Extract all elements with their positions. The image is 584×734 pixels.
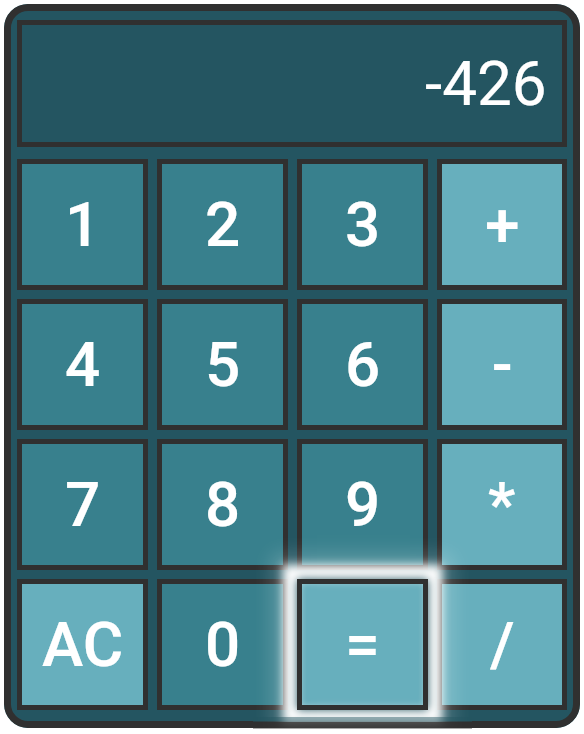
staticText: AC: [42, 608, 124, 681]
button[interactable]: *: [437, 439, 567, 570]
staticText: 8: [205, 468, 241, 541]
button[interactable]: +: [437, 159, 567, 290]
staticText: 3: [345, 188, 381, 261]
button[interactable]: 4: [17, 299, 148, 430]
button[interactable]: 1: [17, 159, 148, 290]
button[interactable]: AC: [17, 579, 148, 710]
button[interactable]: 6: [297, 299, 428, 430]
staticText: +: [485, 188, 520, 261]
staticText: -: [492, 328, 513, 401]
staticText: 6: [345, 328, 381, 401]
button[interactable]: 7: [17, 439, 148, 570]
button[interactable]: 0: [157, 579, 288, 710]
staticText: *: [488, 468, 516, 541]
staticText: /: [490, 608, 515, 681]
staticText: 7: [65, 468, 101, 541]
staticText: -426: [425, 47, 547, 120]
staticText: 5: [205, 328, 241, 401]
button[interactable]: 2: [157, 159, 288, 290]
button[interactable]: -: [437, 299, 567, 430]
button[interactable]: -426: [17, 20, 567, 147]
staticText: 9: [345, 468, 381, 541]
button[interactable]: /: [437, 579, 567, 710]
staticText: 4: [65, 328, 101, 401]
button[interactable]: 3: [297, 159, 428, 290]
staticText: =: [345, 608, 380, 681]
button[interactable]: 5: [157, 299, 288, 430]
button[interactable]: 9: [297, 439, 428, 570]
button[interactable]: =: [297, 579, 428, 710]
staticText: 2: [205, 188, 241, 261]
staticText: 1: [65, 188, 101, 261]
staticText: 0: [205, 608, 241, 681]
button[interactable]: 8: [157, 439, 288, 570]
